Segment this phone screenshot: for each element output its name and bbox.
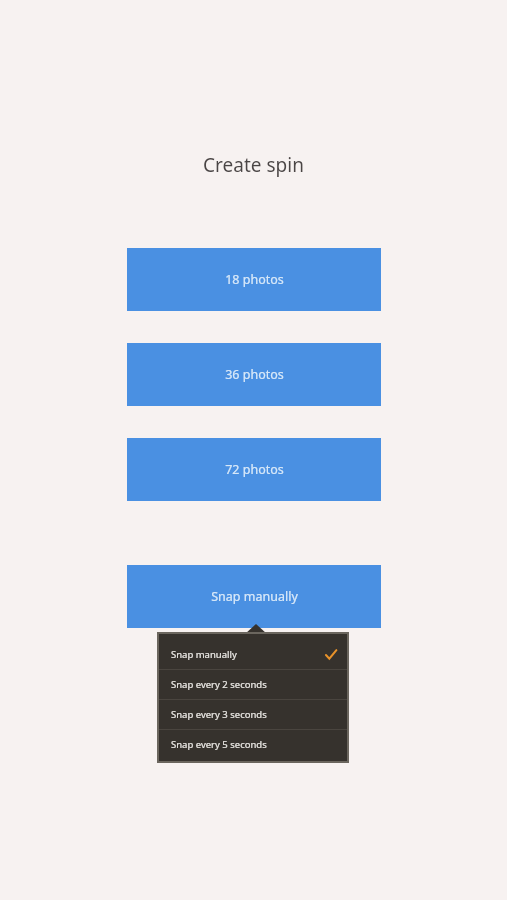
button[interactable]: Snap manually bbox=[127, 565, 381, 628]
button[interactable]: 18 photos bbox=[127, 248, 381, 311]
button[interactable]: 36 photos bbox=[127, 343, 381, 406]
button[interactable]: Snap every 2 seconds bbox=[159, 670, 347, 699]
staticText: Create spin bbox=[203, 152, 304, 178]
button[interactable]: Snap every 5 seconds bbox=[159, 730, 347, 759]
staticText: 18 photos bbox=[225, 271, 284, 288]
button[interactable]: 72 photos bbox=[127, 438, 381, 501]
staticText: Snap every 5 seconds bbox=[171, 738, 267, 751]
button[interactable]: Snap manually bbox=[159, 640, 347, 669]
staticText: 36 photos bbox=[225, 366, 284, 383]
staticText: Snap manually bbox=[171, 648, 237, 661]
other: Selected bbox=[325, 649, 337, 661]
staticText: Snap every 3 seconds bbox=[171, 708, 267, 721]
staticText: Snap every 2 seconds bbox=[171, 678, 267, 691]
staticText: 72 photos bbox=[225, 461, 284, 478]
button[interactable]: Snap every 3 seconds bbox=[159, 700, 347, 729]
staticText: Snap manually bbox=[211, 588, 298, 605]
